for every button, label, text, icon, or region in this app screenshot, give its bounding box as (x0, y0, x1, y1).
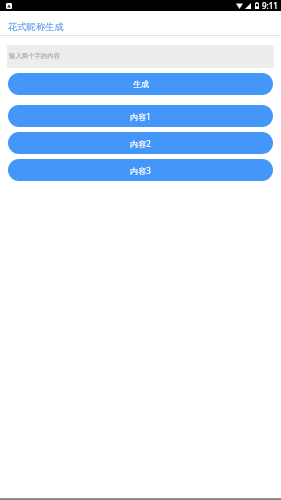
staticText: 内容2 (130, 138, 151, 149)
button[interactable]: 内容1 (8, 105, 273, 127)
other: Battery (255, 2, 259, 9)
staticText: 内容1 (130, 111, 151, 122)
other: Wi-Fi (236, 3, 243, 9)
button[interactable]: 内容3 (8, 159, 273, 181)
staticText: 内容3 (130, 165, 151, 176)
other: Cellular signal (245, 3, 251, 9)
button[interactable]: 输入两个字的内容 (7, 45, 274, 68)
staticText: 输入两个字的内容 (9, 52, 61, 60)
button[interactable]: 内容2 (8, 132, 273, 154)
staticText: 9:11 (262, 0, 278, 11)
staticText: 花式昵称生成 (8, 21, 64, 33)
staticText: 生成 (133, 79, 149, 89)
other: App notification (6, 3, 12, 9)
button[interactable]: 生成 (8, 73, 273, 95)
